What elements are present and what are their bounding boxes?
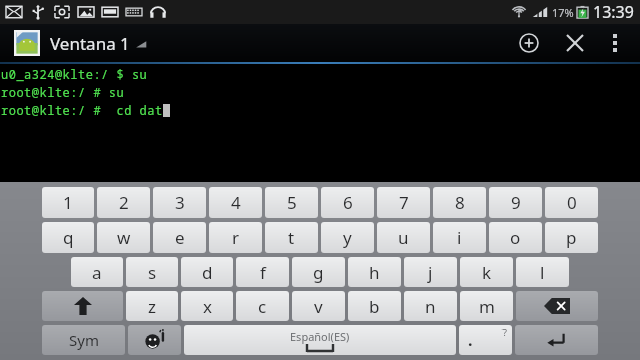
button[interactable]: i: [433, 222, 486, 253]
staticText: 4: [231, 191, 241, 214]
button[interactable]: k: [460, 257, 513, 287]
staticText: 8: [455, 191, 465, 214]
staticText: 2: [119, 191, 129, 214]
button[interactable]: f: [236, 257, 289, 287]
staticText: 5: [287, 191, 297, 214]
staticText: b: [369, 295, 380, 318]
button[interactable]: Ventana 1: [14, 30, 148, 56]
staticText: s: [148, 261, 157, 284]
button[interactable]: New window: [506, 24, 552, 62]
staticText: r: [232, 226, 240, 249]
staticText: 17%: [552, 5, 574, 20]
button[interactable]: r: [209, 222, 262, 253]
button[interactable]: u0_a324@klte:/ $ su: [0, 64, 640, 182]
staticText: u: [398, 226, 409, 249]
button[interactable]: 4: [209, 187, 262, 218]
staticText: 9: [511, 191, 521, 214]
staticText: root@klte:/ # cd dat: [1, 102, 163, 118]
staticText: f: [260, 261, 266, 284]
button[interactable]: 6: [321, 187, 374, 218]
staticText: Español(ES): [290, 329, 350, 344]
button[interactable]: Sym: [42, 325, 125, 355]
button[interactable]: 3: [153, 187, 206, 218]
button[interactable]: 7: [377, 187, 430, 218]
button[interactable]: Emoji and voice input: [128, 325, 181, 355]
staticText: i: [457, 226, 462, 249]
button[interactable]: h: [348, 257, 401, 287]
button[interactable]: a: [71, 257, 123, 287]
staticText: c: [258, 295, 267, 318]
staticText: t: [288, 226, 295, 249]
button[interactable]: 5: [265, 187, 318, 218]
button[interactable]: ̈?: [459, 325, 512, 355]
button[interactable]: Shift: [42, 291, 123, 321]
button[interactable]: x: [181, 291, 233, 321]
button[interactable]: 1: [42, 187, 94, 218]
staticText: j: [428, 261, 433, 284]
staticText: x: [203, 295, 212, 318]
button[interactable]: Close window: [552, 24, 598, 62]
staticText: m: [479, 295, 495, 318]
staticText: g: [313, 261, 324, 284]
staticText: w: [117, 226, 131, 249]
staticText: .: [468, 329, 473, 351]
button[interactable]: v: [292, 291, 345, 321]
button[interactable]: n: [404, 291, 457, 321]
staticText: 3: [175, 191, 185, 214]
button[interactable]: Enter: [515, 325, 598, 355]
staticText: 6: [343, 191, 353, 214]
staticText: l: [540, 261, 545, 284]
staticText: d: [202, 261, 213, 284]
button[interactable]: 8: [433, 187, 486, 218]
button[interactable]: Español(ES): [184, 325, 456, 355]
staticText: n: [425, 295, 436, 318]
staticText: 13:39: [593, 1, 634, 23]
staticText: e: [175, 226, 185, 249]
staticText: Ventana 1: [50, 32, 130, 55]
button[interactable]: 0: [545, 187, 598, 218]
staticText: 7: [399, 191, 409, 214]
staticText: y: [343, 226, 352, 249]
staticText: 1: [63, 191, 73, 214]
button[interactable]: 9: [489, 187, 542, 218]
button[interactable]: c: [236, 291, 289, 321]
button[interactable]: s: [126, 257, 178, 287]
staticText: root@klte:/ # su: [1, 84, 125, 100]
button[interactable]: m: [460, 291, 513, 321]
button[interactable]: z: [126, 291, 178, 321]
staticText: Sym: [69, 330, 99, 350]
button[interactable]: j: [404, 257, 457, 287]
button[interactable]: g: [292, 257, 345, 287]
staticText: o: [510, 226, 521, 249]
button[interactable]: y: [321, 222, 374, 253]
staticText: p: [566, 226, 577, 249]
button[interactable]: More options: [598, 26, 632, 60]
button[interactable]: t: [265, 222, 318, 253]
staticText: v: [314, 295, 323, 318]
staticText: ̈?: [503, 326, 507, 338]
button[interactable]: d: [181, 257, 233, 287]
staticText: a: [92, 261, 102, 284]
staticText: h: [369, 261, 380, 284]
button[interactable]: u: [377, 222, 430, 253]
staticText: 0: [567, 191, 577, 214]
button[interactable]: l: [516, 257, 569, 287]
button[interactable]: Backspace: [516, 291, 598, 321]
button[interactable]: o: [489, 222, 542, 253]
button[interactable]: e: [153, 222, 206, 253]
button[interactable]: p: [545, 222, 598, 253]
staticText: k: [482, 261, 492, 284]
staticText: u0_a324@klte:/ $ su: [1, 66, 148, 82]
staticText: q: [63, 226, 74, 249]
button[interactable]: b: [348, 291, 401, 321]
button[interactable]: w: [97, 222, 150, 253]
staticText: z: [148, 295, 156, 318]
button[interactable]: 2: [97, 187, 150, 218]
button[interactable]: q: [42, 222, 94, 253]
